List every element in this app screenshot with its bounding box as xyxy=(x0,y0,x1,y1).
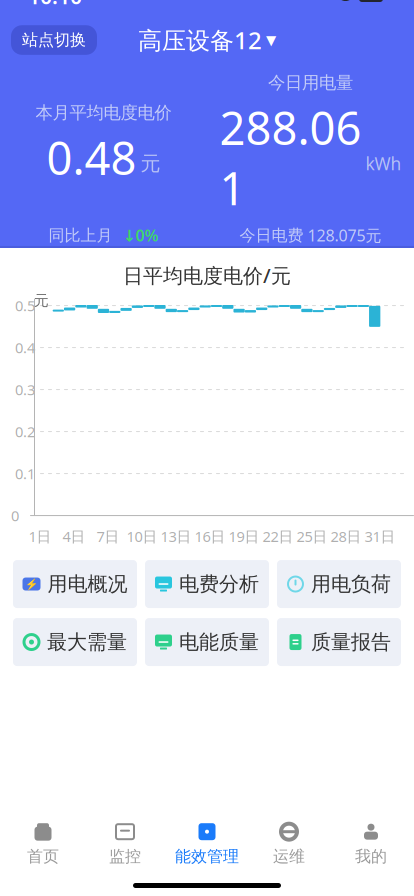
staticText: 电能质量 xyxy=(179,630,259,654)
staticText: 16日 xyxy=(194,527,225,546)
staticText: 首页 xyxy=(27,847,59,866)
staticText: 128.075元 xyxy=(307,225,381,246)
staticText: 最大需量 xyxy=(47,630,127,654)
staticText: 今日电费 xyxy=(239,225,303,245)
staticText: 28日 xyxy=(330,527,361,546)
staticText: 元 xyxy=(140,151,160,176)
staticText: 能效管理 xyxy=(175,847,239,866)
staticText: 用电概况 xyxy=(47,572,127,596)
staticText: 监控 xyxy=(109,847,141,866)
staticText: ▼ xyxy=(266,32,276,48)
button[interactable]: 我的 xyxy=(330,820,412,868)
button[interactable]: 电能质量 xyxy=(145,618,269,666)
staticText: kWh xyxy=(365,152,401,175)
button[interactable]: 质量报告 xyxy=(277,618,401,666)
button[interactable]: 能效管理 xyxy=(166,820,248,868)
button[interactable]: 最大需量 xyxy=(13,618,137,666)
staticText: 当月电费 xyxy=(221,254,285,274)
button[interactable]: 运维 xyxy=(248,820,330,868)
staticText: 0.3 xyxy=(15,380,35,399)
staticText: 0 xyxy=(11,506,19,525)
staticText: 0.5 xyxy=(15,296,35,315)
staticText: 4日 xyxy=(62,527,85,546)
staticText: 运维 xyxy=(273,847,305,866)
staticText: 用电负荷 xyxy=(311,572,391,596)
staticText: 24854.69 xyxy=(90,252,165,275)
button[interactable]: 监控 xyxy=(84,820,166,868)
staticText: 13日 xyxy=(160,527,191,546)
staticText: 0.1 xyxy=(15,464,35,483)
staticText: 质量报告 xyxy=(311,630,391,654)
staticText: 电费分析 xyxy=(179,572,259,596)
staticText: 22日 xyxy=(262,527,293,546)
staticText: 288.061 xyxy=(219,97,361,218)
staticText: kWh xyxy=(172,254,203,274)
staticText: 19日 xyxy=(228,527,259,546)
staticText: 高压设备12 xyxy=(138,24,262,56)
staticText: 0.4 xyxy=(15,338,35,357)
staticText: 同比上月 xyxy=(48,225,112,245)
button[interactable]: 电费分析 xyxy=(145,560,269,608)
staticText: 今日用电量 xyxy=(268,72,353,93)
staticText: 日平均电度电价/元 xyxy=(123,262,291,289)
staticText: 25日 xyxy=(296,527,327,546)
staticText: 站点切换 xyxy=(22,30,86,50)
staticText: 我的 xyxy=(355,847,387,866)
button[interactable]: 首页 xyxy=(2,820,84,868)
staticText: 7日 xyxy=(96,527,119,546)
staticText: 1日 xyxy=(28,527,51,546)
staticText: 31日 xyxy=(364,527,395,546)
staticText: ⚡ xyxy=(25,578,38,590)
staticText: 10:10 xyxy=(28,0,82,10)
staticText: 0.48 xyxy=(46,127,136,188)
staticText: 10日 xyxy=(126,527,157,546)
staticText: 元 xyxy=(34,292,49,310)
button[interactable]: ⚡ xyxy=(13,560,137,608)
button[interactable]: 用电负荷 xyxy=(277,560,401,608)
staticText: 0.2 xyxy=(15,422,35,441)
button[interactable]: 站点切换 xyxy=(11,25,97,55)
staticText: ↓0% xyxy=(122,225,158,246)
staticText: 本月平均电度电价 xyxy=(35,102,171,123)
